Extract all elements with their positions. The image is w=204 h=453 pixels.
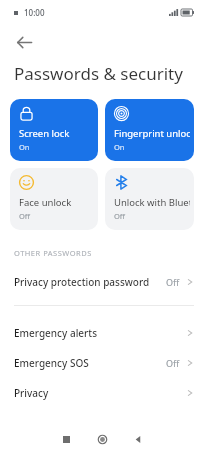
staticText: Off	[166, 276, 180, 288]
staticText: Screen lock	[19, 127, 70, 140]
staticText: Emergency SOS	[14, 356, 166, 370]
button[interactable]: Home	[84, 425, 120, 453]
staticText: Passwords & security	[14, 62, 183, 85]
staticText: Face unlock	[19, 196, 72, 209]
button[interactable]: Emergency alerts	[0, 318, 204, 348]
staticText: On	[19, 142, 30, 152]
button[interactable]: Privacy	[0, 378, 204, 408]
staticText: Privacy protection password	[14, 275, 166, 289]
button[interactable]: Unlock with Bluetooth	[105, 168, 194, 230]
button[interactable]: Fingerprint unlock	[105, 99, 194, 161]
button[interactable]: Privacy protection password	[0, 267, 204, 297]
staticText: Unlock with Bluetooth	[114, 196, 190, 209]
button[interactable]: Screen lock	[10, 99, 98, 161]
staticText: OTHER PASSWORDS	[14, 248, 92, 258]
button[interactable]: Face unlock	[10, 168, 98, 230]
staticText: Off	[19, 211, 31, 221]
staticText: Fingerprint unlock	[114, 127, 190, 140]
staticText: On	[114, 142, 125, 152]
button[interactable]: Back	[120, 425, 156, 453]
button[interactable]: Recent apps	[48, 425, 84, 453]
staticText: Off	[114, 211, 126, 221]
button[interactable]: Back	[6, 24, 42, 60]
staticText: 10:00	[24, 7, 45, 18]
staticText: Emergency alerts	[14, 326, 186, 340]
button[interactable]: Emergency SOS	[0, 348, 204, 378]
staticText: Off	[166, 357, 180, 369]
staticText: Privacy	[14, 386, 186, 400]
